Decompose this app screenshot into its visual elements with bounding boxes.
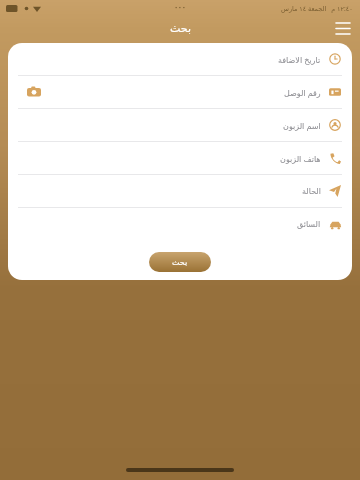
button[interactable]: اسم الزبون [8, 109, 352, 141]
staticText: السائق [297, 220, 321, 229]
staticText: بحث [172, 258, 188, 267]
staticText: • • • [175, 4, 185, 12]
button[interactable]: Camera [24, 82, 44, 102]
staticText: رقم الوصل [284, 87, 321, 98]
button[interactable]: السائق [8, 208, 352, 240]
button[interactable]: تاريخ الاضافة [8, 43, 352, 75]
staticText: هاتف الزبون [280, 153, 321, 164]
button[interactable]: بحث [149, 252, 211, 272]
button[interactable]: Camera [8, 76, 352, 108]
staticText: ١٢:٤٠ م الجمعة ١٤ مارس [281, 4, 353, 13]
staticText: اسم الزبون [283, 120, 321, 131]
staticText: الحالة [302, 187, 321, 196]
button[interactable]: الحالة [8, 175, 352, 207]
staticText: بحث [170, 22, 191, 35]
button[interactable]: Menu [330, 16, 356, 40]
staticText: تاريخ الاضافة [278, 54, 321, 65]
button[interactable]: هاتف الزبون [8, 142, 352, 174]
